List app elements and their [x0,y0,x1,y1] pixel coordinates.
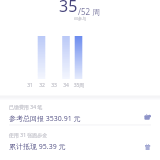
staticText: 累计抵现 95.39 元 [9,142,66,152]
staticText: 参考总回报 3530.91 元 [9,114,81,124]
staticText: 使用 31 张跑步金 [9,132,48,139]
button[interactable]: 已缴费用 34 笔 [0,104,160,130]
staticText: /52 周 [78,6,101,17]
other: 累计抵现明细 [144,143,152,151]
button[interactable]: 使用 31 张跑步金 [0,132,160,158]
staticText: 35 [59,0,78,17]
staticText: 已缴费用 34 笔 [9,104,43,111]
staticText: 32 [32,82,52,89]
staticText: 已参与 [0,16,160,21]
staticText: 31 [20,82,40,89]
staticText: 33 [44,82,64,89]
staticText: 34 [56,82,76,89]
other: 参考总回报明细 [144,113,152,121]
staticText: 35周 [69,82,89,89]
